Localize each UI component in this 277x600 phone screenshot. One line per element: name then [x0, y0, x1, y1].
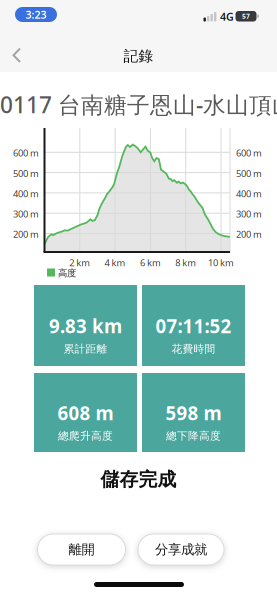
staticText: 總爬升高度 — [58, 429, 113, 442]
staticText: 離開 — [68, 541, 94, 558]
staticText: 記錄 — [123, 47, 153, 65]
button[interactable]: 離開 — [37, 534, 125, 565]
staticText: 花費時間 — [171, 342, 215, 355]
staticText: 07:11:52 — [155, 314, 231, 338]
staticText: 4G — [220, 9, 234, 24]
button[interactable]: 分享成就 — [138, 534, 224, 565]
staticText: 300 m — [236, 208, 262, 220]
staticText: 分享成就 — [155, 541, 207, 558]
staticText: 6 km — [140, 256, 161, 269]
button[interactable]: 598 m — [142, 373, 245, 452]
staticText: 598 m — [165, 401, 221, 425]
staticText: 400 m — [236, 187, 262, 200]
staticText: 高度 — [58, 267, 76, 279]
button[interactable]: 07:11:52 — [142, 285, 245, 366]
staticText: 200 m — [236, 228, 262, 240]
staticText: 300 m — [13, 208, 39, 220]
staticText: 600 m — [13, 147, 39, 159]
staticText: 儲存完成 — [100, 468, 176, 491]
staticText: 10 km — [208, 256, 234, 269]
staticText: 0117 台南糖子恩山-水山頂山縱走 — [0, 89, 277, 119]
staticText: 總下降高度 — [166, 429, 221, 442]
button[interactable]: 9.83 km — [34, 285, 137, 366]
staticText: 3:23 — [25, 7, 46, 22]
staticText: 400 m — [13, 187, 39, 200]
staticText: 200 m — [13, 228, 39, 240]
button[interactable]: 3:23 — [15, 7, 57, 22]
staticText: 608 m — [57, 401, 113, 425]
button[interactable] — [12, 47, 21, 63]
staticText: 累計距離 — [63, 342, 107, 355]
staticText: 57 — [242, 12, 250, 21]
staticText: 2 km — [69, 256, 90, 269]
staticText: 8 km — [175, 256, 196, 269]
staticText: 500 m — [236, 167, 262, 179]
staticText: 4 km — [105, 256, 126, 269]
staticText: 500 m — [13, 167, 39, 179]
button[interactable]: 608 m — [34, 373, 137, 452]
staticText: 9.83 km — [49, 314, 122, 338]
staticText: 600 m — [236, 147, 262, 159]
